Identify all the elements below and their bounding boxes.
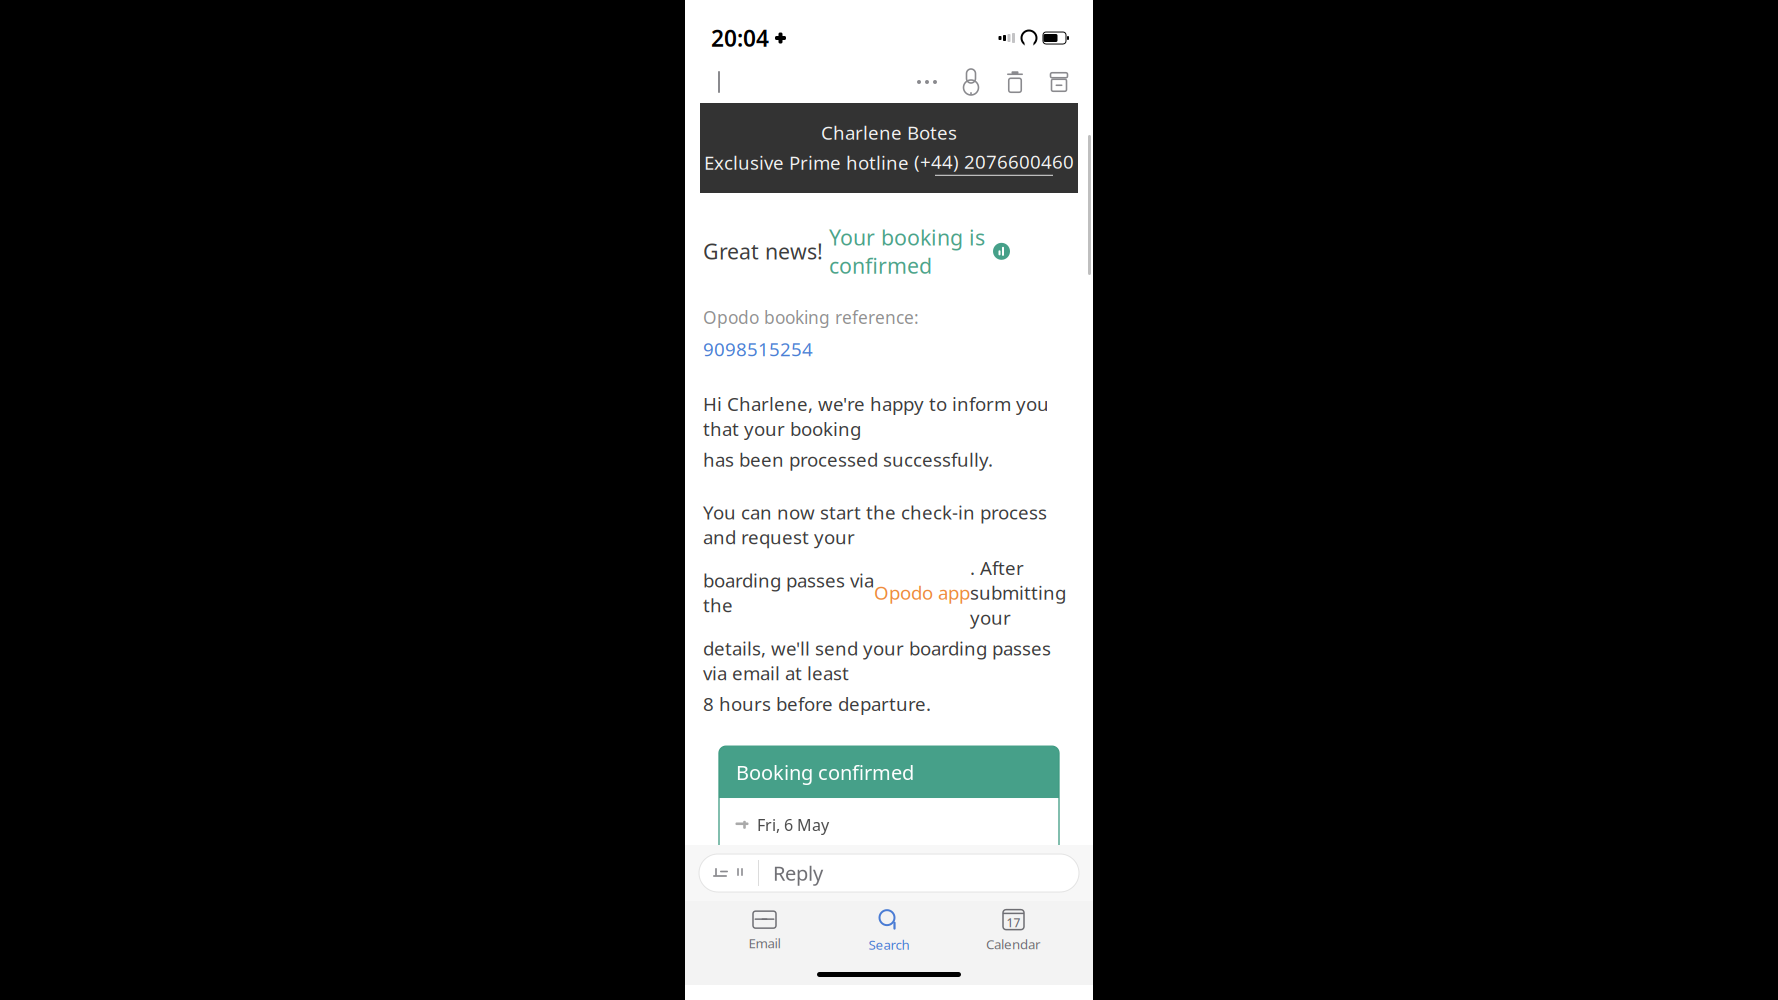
button[interactable]: More: [905, 60, 949, 104]
staticText: Leeds Bradford: [735, 843, 887, 872]
staticText: Opodo app: [874, 580, 970, 605]
staticText: 9098515254: [703, 337, 813, 361]
button[interactable]: Reply options: [699, 854, 758, 892]
button[interactable]: Opodo app: [874, 580, 970, 605]
staticText: Email: [748, 934, 780, 952]
staticText: Exclusive Prime hotline: [704, 150, 914, 175]
staticText: boarding passes via the: [703, 568, 874, 617]
staticText: Search: [868, 936, 909, 953]
staticText: Hi Charlene, we're happy to inform you t…: [703, 391, 1049, 441]
staticText: Reply: [773, 860, 823, 886]
button[interactable]: Reply: [759, 854, 1079, 892]
staticText: Alicante: [735, 964, 816, 992]
staticText: You can now start the check-in process a…: [703, 500, 1047, 549]
staticText: Confirmed: [735, 881, 816, 902]
staticText: 8 hours before departure.: [703, 691, 931, 716]
staticText: 17: [1006, 915, 1020, 931]
staticText: Leeds Bradford: [870, 964, 1022, 992]
staticText: Fri, 6 May: [757, 814, 829, 835]
staticText: has been processed successfully.: [703, 447, 993, 472]
staticText: . After submitting your: [970, 555, 1066, 630]
staticText: details, we'll send your boarding passes…: [703, 636, 1051, 685]
button[interactable]: Dictate: [949, 60, 993, 104]
button[interactable]: Email: [719, 907, 809, 955]
staticText: Booking confirmed: [736, 759, 914, 785]
button[interactable]: Back: [699, 60, 743, 104]
button[interactable]: Search: [844, 907, 934, 955]
button[interactable]: Archive: [1037, 60, 1081, 104]
button[interactable]: 17: [968, 907, 1058, 955]
staticText: Charlene Botes: [821, 120, 957, 145]
staticText: Calendar: [986, 935, 1041, 953]
button[interactable]: 9098515254: [703, 337, 813, 361]
staticText: Great news!: [703, 237, 829, 265]
staticText: Sat, 14 May: [757, 935, 843, 956]
staticText: Your booking is confirmed: [829, 223, 985, 280]
staticText: Alicante: [941, 843, 1022, 872]
button[interactable]: Delete: [993, 60, 1037, 104]
staticText: (+44) 2076600460: [914, 149, 1074, 174]
staticText: 20:04: [711, 23, 769, 53]
staticText: Opodo booking reference:: [703, 306, 919, 329]
